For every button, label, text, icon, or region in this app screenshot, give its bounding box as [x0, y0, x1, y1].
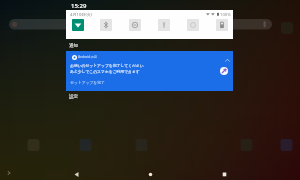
staticText: あと少しでこのスマホをご利用できます — [70, 69, 140, 74]
button[interactable]: Home — [146, 170, 155, 179]
button[interactable]: Auto-rotate — [187, 19, 199, 31]
button[interactable]: Continue setup — [220, 67, 228, 75]
staticText: 通知 — [69, 43, 78, 49]
staticText: 15:29 — [71, 2, 87, 10]
button[interactable]: Bluetooth — [100, 19, 112, 31]
button[interactable]: Back — [72, 170, 81, 179]
button[interactable]: Battery saver — [216, 19, 228, 31]
staticText: 4月10日(火) — [70, 12, 93, 18]
button[interactable]: Switch input method — [6, 170, 12, 176]
staticText: セットアップを完了 — [70, 80, 105, 85]
staticText: 設定 — [69, 94, 78, 100]
staticText: Android 設定 — [78, 55, 98, 59]
button[interactable]: Collapse — [224, 57, 231, 64]
button[interactable]: Flashlight — [158, 19, 170, 31]
staticText: 100% — [220, 12, 231, 18]
button[interactable]: Android 設定 — [66, 51, 233, 91]
button[interactable]: Recents — [220, 170, 229, 179]
staticText: お使いのセットアップを完了してください — [70, 63, 144, 68]
button[interactable]: Do not disturb — [129, 19, 141, 31]
button[interactable]: Wi-Fi — [72, 19, 84, 31]
